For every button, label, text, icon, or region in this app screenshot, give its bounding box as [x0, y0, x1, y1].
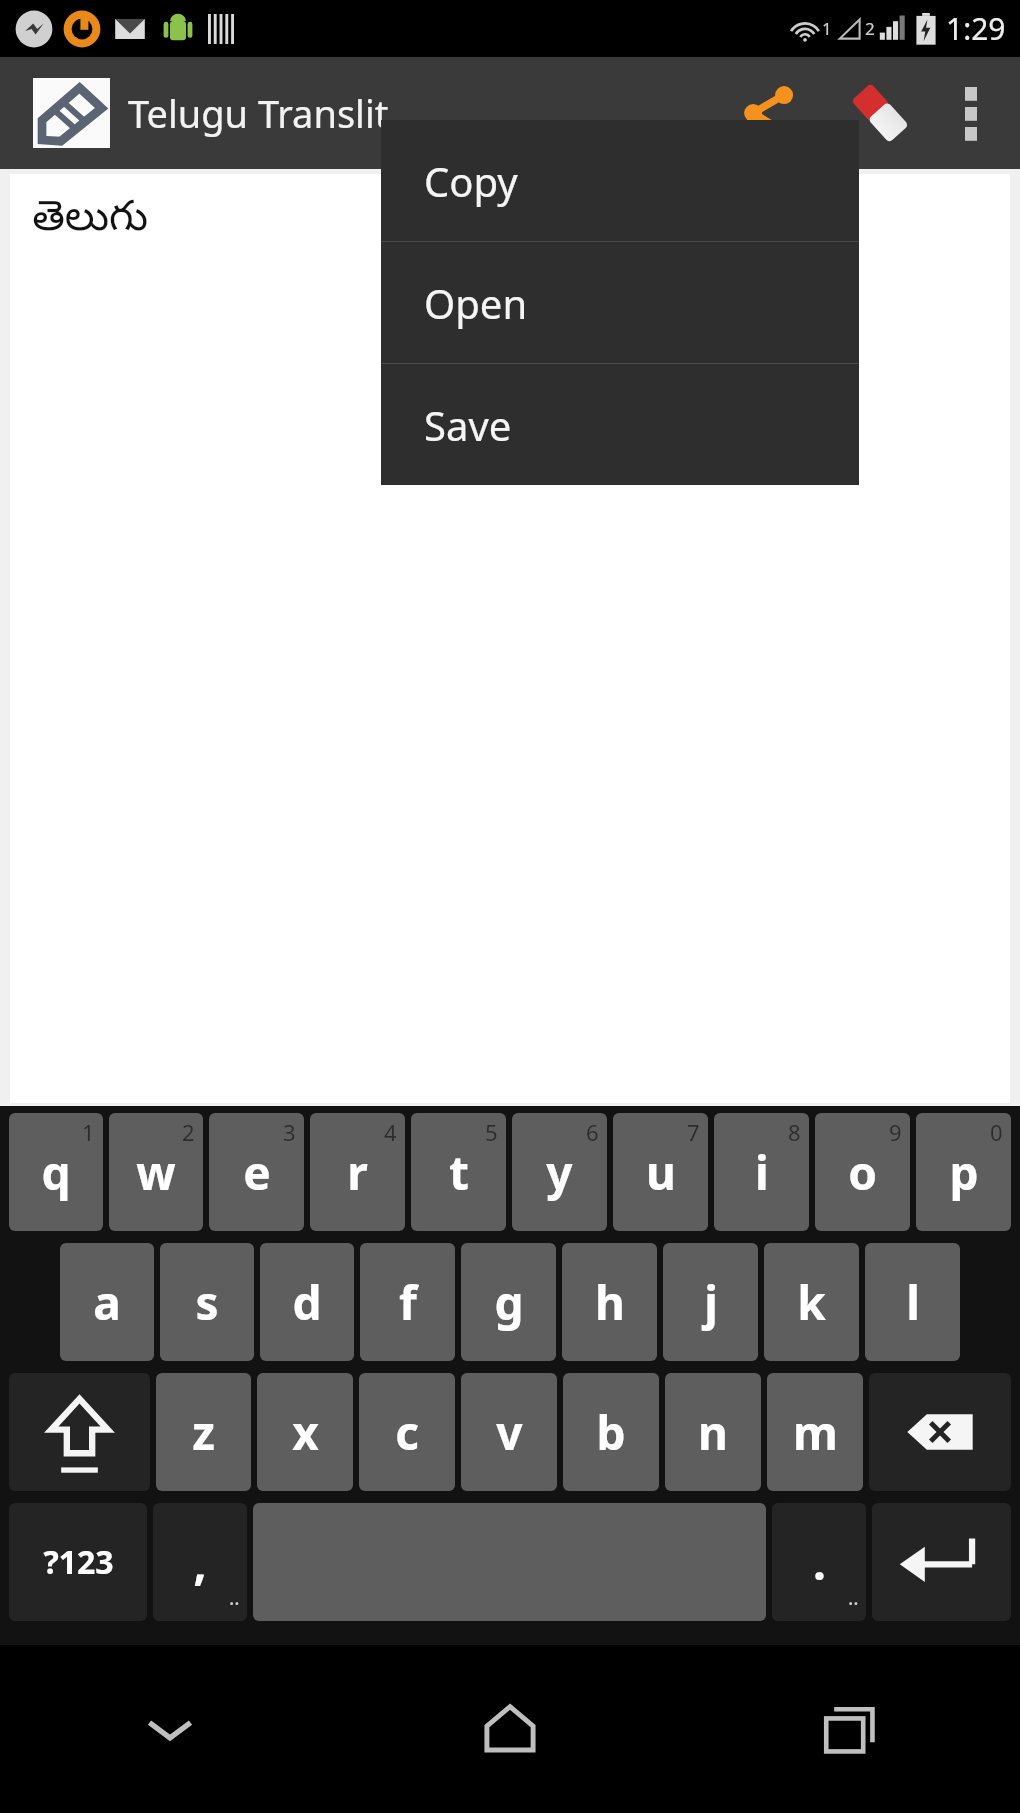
button[interactable]: r	[310, 1113, 405, 1231]
button[interactable]: ,	[153, 1503, 247, 1621]
staticText: j	[704, 1271, 718, 1334]
button[interactable]: ?123	[9, 1503, 147, 1621]
staticText: k	[797, 1271, 826, 1334]
staticText: Open	[424, 276, 528, 330]
button[interactable]: c	[359, 1373, 455, 1491]
button[interactable]: .	[772, 1503, 866, 1621]
button[interactable]: n	[665, 1373, 761, 1491]
button[interactable]: h	[562, 1243, 657, 1361]
staticText: v	[496, 1401, 523, 1464]
button[interactable]: Recent apps	[680, 1645, 1020, 1813]
staticText: 2	[182, 1117, 195, 1147]
button[interactable]: j	[663, 1243, 758, 1361]
button[interactable]: p	[916, 1113, 1011, 1231]
staticText: x	[292, 1401, 319, 1464]
staticText: i	[755, 1141, 769, 1204]
staticText: 4	[384, 1117, 397, 1147]
button[interactable]: తెలుగు	[10, 174, 1010, 1103]
button[interactable]: Shift	[9, 1373, 150, 1491]
staticText: Save	[424, 398, 512, 452]
button[interactable]: Home	[340, 1645, 680, 1813]
staticText: c	[395, 1401, 419, 1464]
staticText: a	[93, 1271, 121, 1334]
button[interactable]: d	[260, 1243, 354, 1361]
staticText: s	[195, 1271, 219, 1334]
staticText: 1	[822, 17, 832, 40]
staticText: 1	[82, 1117, 95, 1147]
staticText: z	[192, 1401, 215, 1464]
staticText: తెలుగు	[32, 194, 149, 251]
button[interactable]: f	[360, 1243, 455, 1361]
button[interactable]: y	[512, 1113, 607, 1231]
button[interactable]: w	[109, 1113, 203, 1231]
staticText: 3	[283, 1117, 296, 1147]
staticText: ?123	[43, 1540, 114, 1584]
staticText: 7	[687, 1117, 700, 1147]
staticText: 5	[485, 1117, 498, 1147]
staticText: t	[449, 1141, 469, 1204]
button[interactable]: b	[563, 1373, 659, 1491]
staticText: 8	[788, 1117, 801, 1147]
staticText: n	[698, 1401, 728, 1464]
staticText: e	[243, 1141, 271, 1204]
staticText: Copy	[424, 154, 518, 208]
button[interactable]: g	[461, 1243, 556, 1361]
staticText: ..	[229, 1584, 240, 1611]
staticText: 6	[586, 1117, 599, 1147]
staticText: 1:29	[946, 8, 1006, 49]
staticText: u	[646, 1141, 676, 1204]
staticText: ..	[848, 1584, 859, 1611]
button[interactable]: s	[160, 1243, 254, 1361]
button[interactable]: z	[156, 1373, 251, 1491]
button[interactable]: More options	[936, 57, 1006, 169]
button[interactable]: v	[461, 1373, 557, 1491]
staticText: y	[546, 1141, 573, 1204]
button[interactable]: x	[257, 1373, 353, 1491]
staticText: d	[292, 1271, 322, 1334]
staticText: ,	[193, 1531, 207, 1594]
button[interactable]: Back	[0, 1645, 340, 1813]
button[interactable]: i	[714, 1113, 809, 1231]
staticText: Telugu Translit...	[128, 87, 712, 139]
button[interactable]: o	[815, 1113, 910, 1231]
staticText: 0	[990, 1117, 1003, 1147]
button[interactable]: a	[60, 1243, 154, 1361]
button[interactable]: k	[764, 1243, 859, 1361]
button[interactable]: u	[613, 1113, 708, 1231]
staticText: 9	[889, 1117, 902, 1147]
staticText: w	[136, 1141, 176, 1204]
staticText: m	[793, 1401, 838, 1464]
button[interactable]: t	[411, 1113, 506, 1231]
staticText: b	[596, 1401, 626, 1464]
staticText: h	[595, 1271, 625, 1334]
button[interactable]: Enter	[872, 1503, 1011, 1621]
button[interactable]: Backspace	[869, 1373, 1011, 1491]
button[interactable]: q	[9, 1113, 103, 1231]
staticText: p	[949, 1141, 979, 1204]
staticText: 2	[865, 17, 875, 40]
staticText: l	[906, 1271, 920, 1334]
button[interactable]: Save	[381, 364, 859, 485]
button[interactable]: Open	[381, 242, 859, 363]
button[interactable]: Share	[712, 57, 824, 169]
staticText: q	[41, 1141, 71, 1204]
button[interactable]: l	[865, 1243, 960, 1361]
staticText: f	[399, 1271, 417, 1334]
button[interactable]: e	[209, 1113, 304, 1231]
button[interactable]: m	[767, 1373, 863, 1491]
staticText: g	[494, 1271, 524, 1334]
staticText: o	[848, 1141, 877, 1204]
button[interactable]: Erase	[824, 57, 936, 169]
button[interactable]: Copy	[381, 120, 859, 241]
staticText: .	[813, 1531, 826, 1594]
button[interactable]: App icon	[33, 78, 110, 148]
staticText: r	[347, 1141, 368, 1204]
